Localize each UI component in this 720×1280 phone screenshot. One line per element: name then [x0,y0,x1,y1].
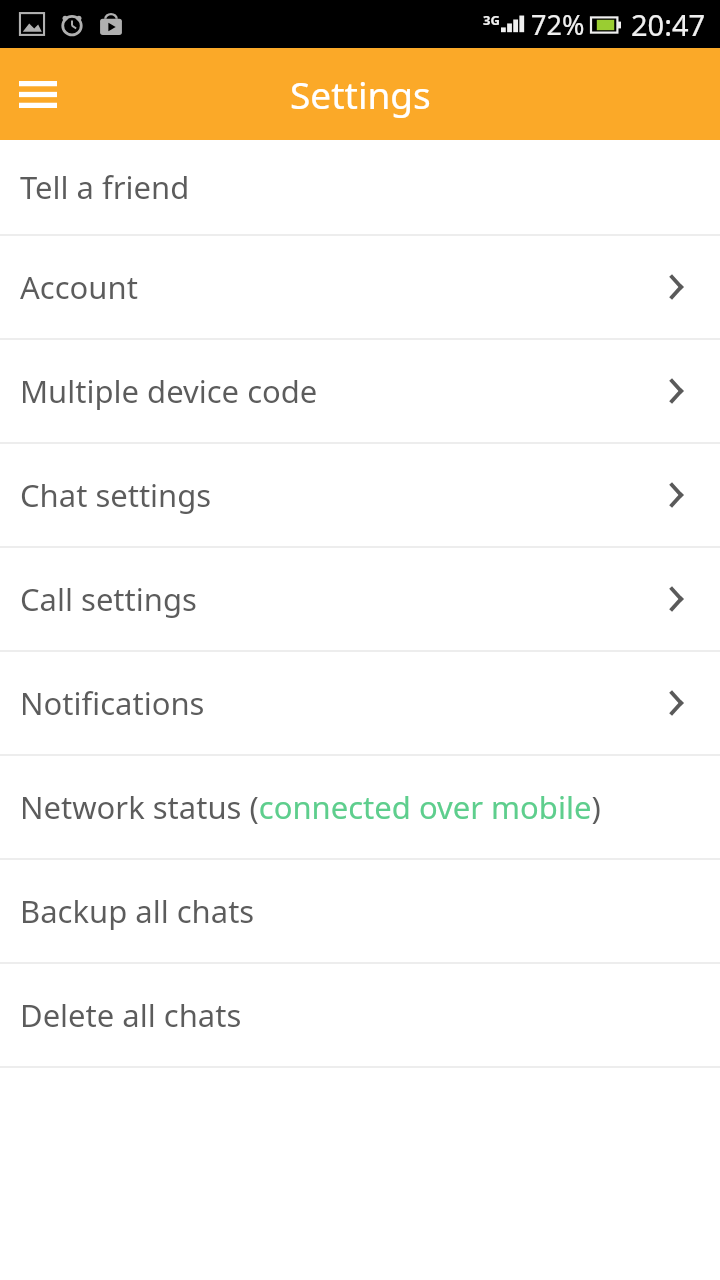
staticText: Tell a friend [20,166,190,208]
staticText: Notifications [20,682,205,724]
button[interactable]: Open navigation menu [12,68,64,120]
button[interactable]: Call settings [0,548,720,650]
staticText: 72% [531,6,585,43]
staticText: 20:47 [631,5,706,44]
button[interactable]: Notifications [0,652,720,754]
button[interactable]: Account [0,236,720,338]
staticText: Multiple device code [20,370,318,412]
button[interactable]: Backup all chats [0,860,720,962]
button[interactable]: Delete all chats [0,964,720,1066]
staticText: 3G [483,11,500,29]
button[interactable]: Network status (connected over mobile) [0,756,720,858]
button[interactable]: Tell a friend [0,140,720,234]
staticText: Settings [290,69,431,119]
staticText: Backup all chats [20,890,255,932]
staticText: Delete all chats [20,994,242,1036]
button[interactable]: Multiple device code [0,340,720,442]
staticText: Account [20,266,138,308]
staticText: Call settings [20,578,197,620]
button[interactable]: Chat settings [0,444,720,546]
staticText: Network status (connected over mobile) [20,786,601,828]
staticText: Chat settings [20,474,212,516]
